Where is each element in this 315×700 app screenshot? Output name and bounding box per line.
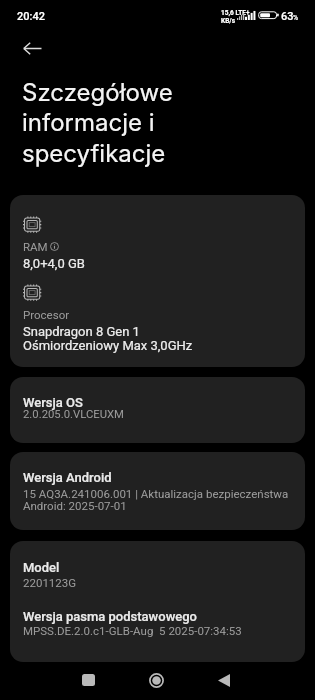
button[interactable]: Wersja OS: [10, 377, 305, 443]
staticText: 15 AQ3A.241006.001 | Aktualizacja bezpie…: [23, 487, 289, 513]
staticText: Procesor: [23, 308, 70, 321]
button[interactable]: Model: [10, 541, 305, 662]
button[interactable]: Recents: [64, 661, 113, 699]
staticText: RAM: [23, 240, 48, 253]
staticText: 15,6 LTE+: [221, 9, 250, 17]
button[interactable]: Home: [132, 661, 181, 699]
staticText: Wersja pasma podstawowego: [23, 609, 197, 624]
staticText: Wersja Android: [23, 470, 112, 485]
staticText: 2.0.205.0.VLCEUXM: [23, 408, 124, 421]
button[interactable]: Back: [13, 29, 51, 67]
staticText: Model: [23, 560, 60, 575]
staticText: Szczegółowe informacje i specyfikacje: [22, 78, 173, 168]
staticText: 20:42: [17, 10, 45, 23]
staticText: Snapdragon 8 Gen 1 Ośmiordzeniowy Max 3,…: [23, 324, 193, 354]
staticText: Wersja OS: [23, 395, 83, 410]
button[interactable]: RAM: [10, 195, 305, 367]
button[interactable]: Back: [199, 661, 248, 699]
staticText: MPSS.DE.2.0.c1-GLB-Aug 5 2025-07:34:53: [23, 624, 242, 637]
button[interactable]: Wersja Android: [10, 452, 305, 530]
staticText: 63: [281, 10, 294, 23]
staticText: 8,0+4,0 GB: [23, 256, 85, 271]
staticText: 2201123G: [23, 576, 77, 589]
staticText: KB/s: [221, 17, 236, 25]
staticText: %: [293, 14, 299, 22]
